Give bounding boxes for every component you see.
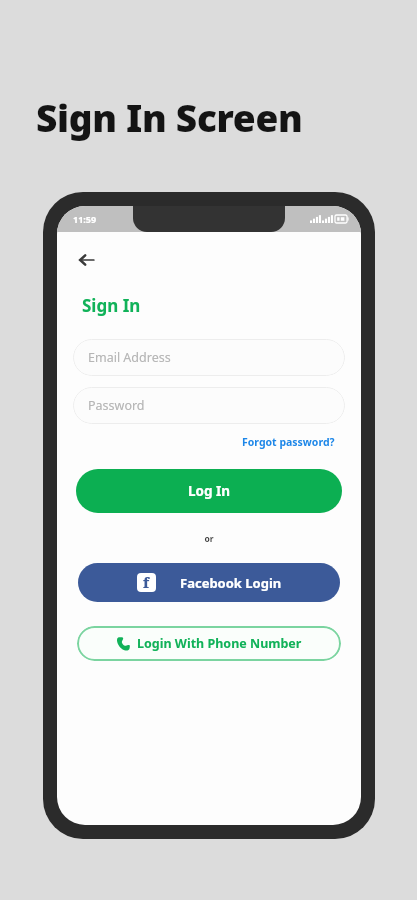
staticText: Forgot password? — [242, 435, 335, 449]
staticText: Facebook Login — [180, 574, 282, 592]
button[interactable]: Email Address — [73, 339, 345, 376]
staticText: f — [143, 573, 150, 592]
staticText: or — [57, 533, 361, 545]
staticText: Password — [88, 397, 145, 414]
button[interactable]: f — [78, 563, 340, 602]
button[interactable]: Login With Phone Number — [77, 626, 341, 661]
button[interactable]: Forgot password? — [240, 433, 337, 451]
button[interactable]: Log In — [76, 469, 342, 513]
staticText: Email Address — [88, 349, 171, 366]
button[interactable]: Password — [73, 387, 345, 424]
staticText: 11:59 — [73, 213, 97, 225]
staticText: Log In — [188, 482, 231, 500]
staticText: Sign In Screen — [36, 92, 417, 142]
staticText: Login With Phone Number — [137, 635, 302, 652]
button[interactable]: Back — [67, 240, 107, 280]
staticText: Sign In — [82, 294, 141, 317]
